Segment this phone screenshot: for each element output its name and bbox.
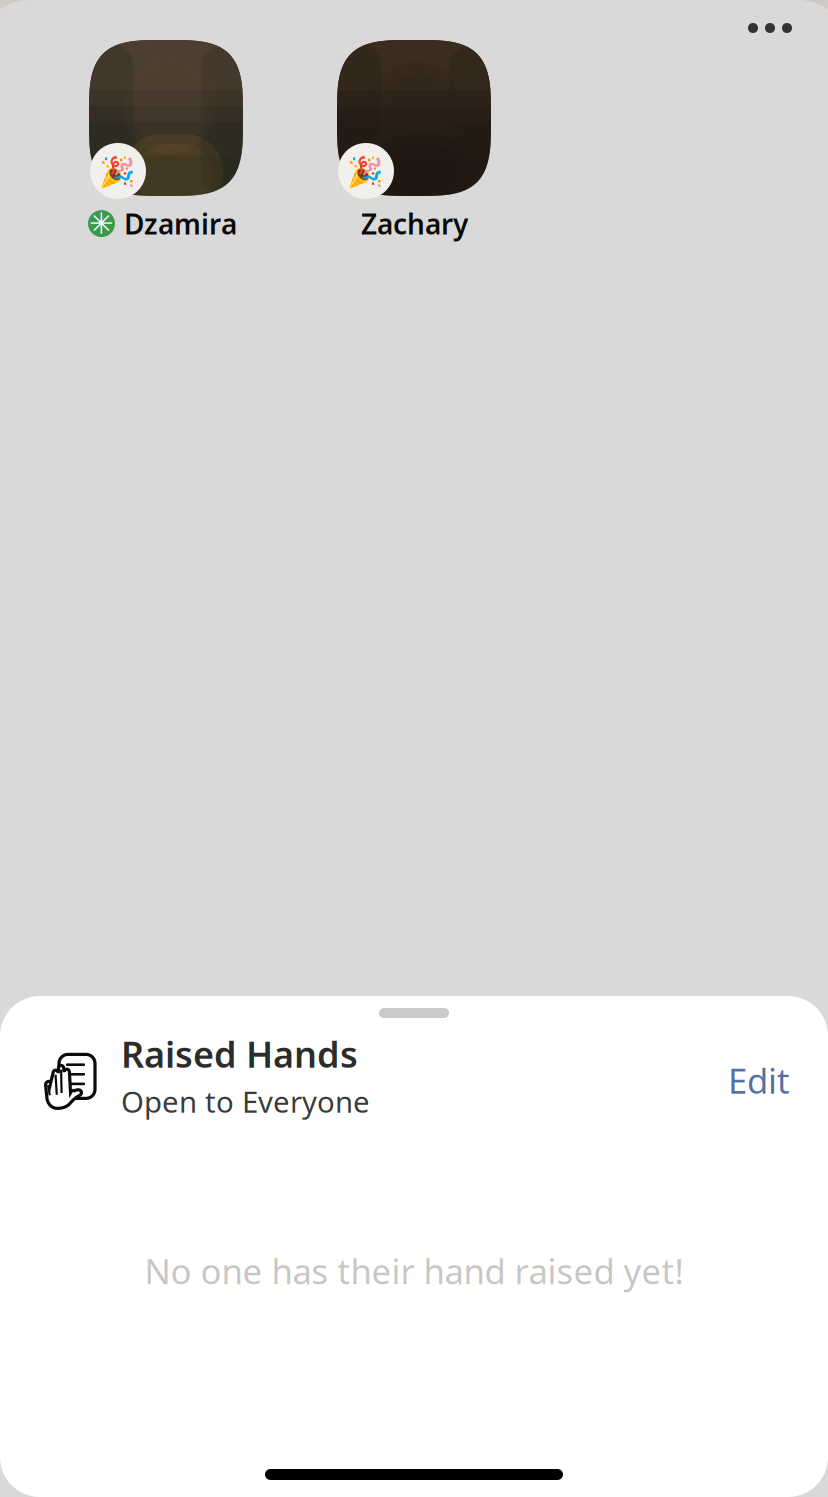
staticText: Raised Hands [121,1030,358,1078]
button[interactable]: More options [726,0,814,56]
staticText: Zachary [361,205,468,242]
staticText: Edit [728,1057,790,1103]
staticText: No one has their hand raised yet! [144,1248,683,1294]
staticText: ✳ [89,207,114,240]
button[interactable]: Edit [708,1036,810,1114]
staticText: 🎉 [346,155,383,189]
staticText: 🎉 [98,155,135,189]
staticText: Dzamira [124,205,237,242]
staticText: Open to Everyone [121,1082,370,1121]
